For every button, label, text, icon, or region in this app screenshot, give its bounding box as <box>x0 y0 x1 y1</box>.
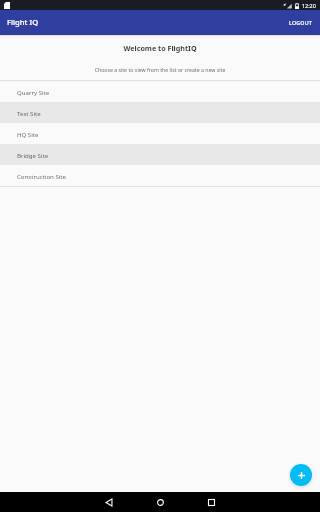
staticText: Construction Site <box>17 172 66 180</box>
staticText: Quarry Site <box>17 88 50 96</box>
button[interactable]: Quarry Site <box>0 81 320 102</box>
staticText: Welcome to FlightIQ <box>0 43 320 53</box>
staticText: Bridge Site <box>17 151 49 159</box>
button[interactable]: Construction Site <box>0 165 320 186</box>
staticText: Choose a site to view from the list or c… <box>0 66 320 73</box>
staticText: HQ Site <box>17 130 39 138</box>
button[interactable]: Back <box>97 492 121 512</box>
staticText: LOGOUT <box>289 19 312 26</box>
button[interactable]: LOGOUT <box>281 15 320 31</box>
staticText: Flight IQ <box>7 17 39 27</box>
staticText: 12:20 <box>302 2 316 9</box>
button[interactable]: Bridge Site <box>0 144 320 165</box>
button[interactable]: Add new site <box>290 464 312 486</box>
button[interactable]: Recents <box>199 492 223 512</box>
staticText: Test Site <box>17 109 41 117</box>
button[interactable]: HQ Site <box>0 123 320 144</box>
button[interactable]: Home <box>148 492 172 512</box>
button[interactable]: Test Site <box>0 102 320 123</box>
